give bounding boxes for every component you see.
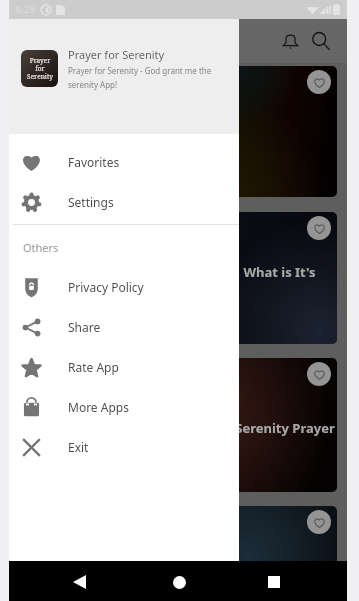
button[interactable]: Favorite xyxy=(307,216,331,240)
button[interactable]: Home xyxy=(161,564,197,600)
staticText: Others xyxy=(23,240,59,255)
staticText: Prayer for Serenity xyxy=(68,47,165,62)
staticText: More Apps xyxy=(68,399,129,415)
button[interactable]: Favorite xyxy=(19,212,337,344)
button[interactable]: Favorite xyxy=(307,70,331,94)
button[interactable]: Search xyxy=(308,28,334,54)
button[interactable]: Favorite xyxy=(19,66,337,197)
staticText: Rate App xyxy=(68,359,119,375)
button[interactable]: Favorite xyxy=(19,506,337,601)
button[interactable]: Favorite xyxy=(307,362,331,386)
button[interactable]: Favorite xyxy=(19,358,337,492)
button[interactable]: Exit xyxy=(9,427,239,467)
staticText: Prayer for Serenity xyxy=(27,56,53,81)
staticText: Settings xyxy=(68,194,114,210)
staticText: Exit xyxy=(68,439,89,455)
button[interactable]: Share xyxy=(9,307,239,347)
button[interactable]: Favorites xyxy=(9,142,239,182)
button[interactable]: Rate App xyxy=(9,347,239,387)
button[interactable]: Settings xyxy=(9,182,239,222)
staticText: nd What is It's xyxy=(223,263,316,281)
staticText: 6:29 xyxy=(16,3,35,16)
staticText: Privacy Policy xyxy=(68,279,144,295)
staticText: Prayer for Serenity - God grant me the s… xyxy=(68,65,222,90)
button[interactable]: Privacy Policy xyxy=(9,267,239,307)
button[interactable]: Favorite xyxy=(307,510,331,534)
button[interactable]: Recents xyxy=(256,564,292,600)
staticText: Share xyxy=(68,319,101,335)
staticText: Serenity Prayer xyxy=(235,419,335,437)
button[interactable]: Back xyxy=(61,564,97,600)
button[interactable]: More Apps xyxy=(9,387,239,427)
button[interactable]: Notifications xyxy=(277,28,303,54)
staticText: Favorites xyxy=(68,154,120,170)
